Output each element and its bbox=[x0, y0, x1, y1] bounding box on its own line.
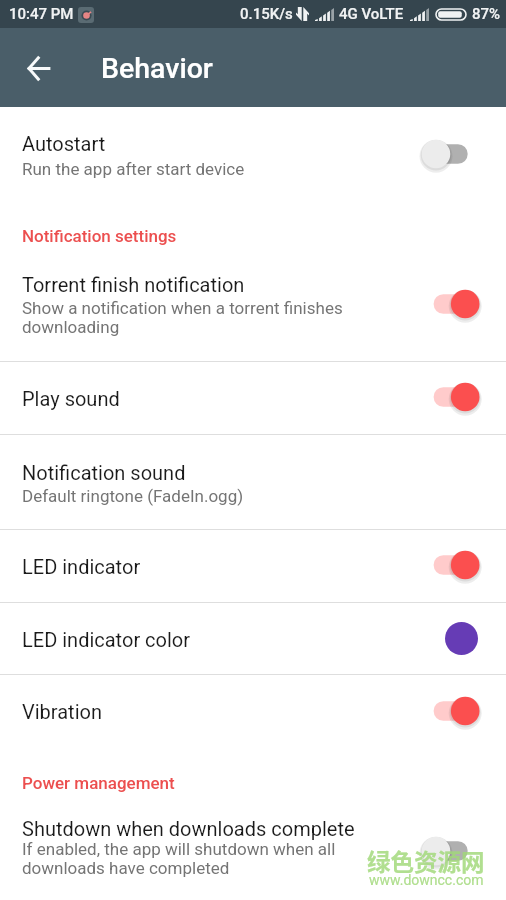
staticText: Default ringtone (FadeIn.ogg) bbox=[22, 486, 382, 506]
staticText: LED indicator color bbox=[22, 628, 382, 651]
staticText: Notification settings bbox=[22, 226, 177, 246]
button[interactable]: Disabled bbox=[420, 137, 482, 171]
button[interactable] bbox=[0, 361, 506, 434]
staticText: 4G VoLTE bbox=[339, 5, 404, 23]
button[interactable]: Disabled bbox=[420, 834, 482, 868]
button[interactable]: Choose LED colour bbox=[445, 622, 478, 655]
button[interactable]: Navigate up bbox=[13, 42, 65, 94]
button[interactable] bbox=[0, 250, 506, 361]
staticText: 10:47 PM bbox=[9, 5, 74, 23]
staticText: Play sound bbox=[22, 387, 382, 410]
button[interactable] bbox=[0, 797, 506, 900]
button[interactable] bbox=[0, 434, 506, 530]
button[interactable] bbox=[0, 674, 506, 765]
staticText: Notification sound bbox=[22, 461, 382, 484]
staticText: Autostart bbox=[22, 132, 382, 155]
button[interactable]: Enabled bbox=[420, 548, 482, 582]
staticText: If enabled, the app will shutdown when a… bbox=[22, 839, 382, 879]
button[interactable] bbox=[0, 602, 506, 674]
staticText: Behavior bbox=[101, 52, 213, 85]
button[interactable]: Enabled bbox=[420, 287, 482, 321]
staticText: Shutdown when downloads complete bbox=[22, 817, 382, 840]
staticText: 87% bbox=[472, 5, 501, 23]
staticText: Run the app after start device bbox=[22, 159, 382, 179]
button[interactable]: Enabled bbox=[420, 380, 482, 414]
button[interactable] bbox=[0, 529, 506, 602]
staticText: LED indicator bbox=[22, 555, 382, 578]
staticText: Show a notification when a torrent finis… bbox=[22, 298, 382, 338]
staticText: Power management bbox=[22, 773, 175, 793]
staticText: Torrent finish notification bbox=[22, 273, 382, 296]
staticText: www.downcc.com bbox=[369, 872, 484, 888]
staticText: 绿色资源网 bbox=[367, 844, 485, 878]
staticText: 0.15K/s bbox=[240, 5, 293, 23]
button[interactable] bbox=[0, 107, 506, 219]
staticText: Vibration bbox=[22, 700, 382, 723]
button[interactable]: Enabled bbox=[420, 694, 482, 728]
